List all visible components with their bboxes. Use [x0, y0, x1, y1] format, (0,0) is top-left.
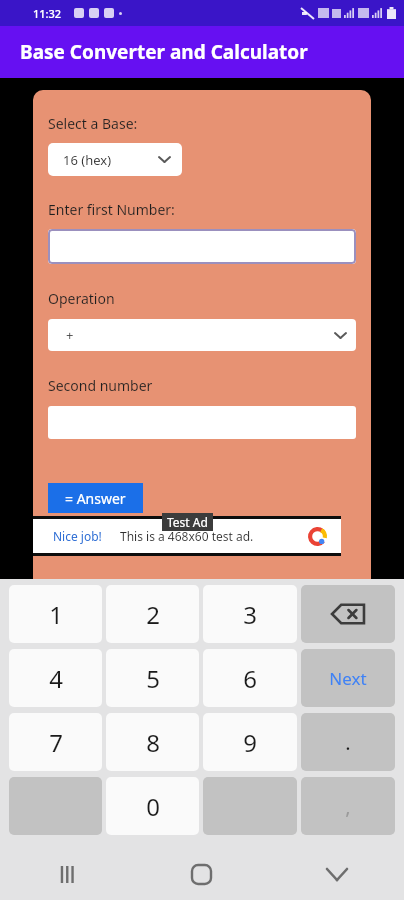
button[interactable]: 0	[106, 777, 199, 835]
staticText: 4	[49, 662, 63, 695]
staticText: 1	[49, 598, 63, 631]
staticText: 0	[146, 790, 160, 823]
staticText: 6	[243, 662, 257, 695]
button[interactable]: Home	[134, 849, 269, 900]
button[interactable]: = Answer	[48, 483, 143, 513]
staticText: Test Ad	[167, 514, 208, 530]
button[interactable]: 8	[106, 713, 199, 771]
button[interactable]: Recents	[0, 849, 134, 900]
staticText: Second number	[48, 376, 153, 395]
button[interactable]: +	[48, 319, 356, 351]
staticText: Base Converter and Calculator	[20, 39, 308, 65]
button[interactable]: Hide keyboard	[269, 849, 404, 900]
button[interactable]: 6	[203, 649, 297, 707]
staticText: = Answer	[65, 489, 126, 508]
staticText: ,	[345, 793, 351, 820]
button[interactable]: Next	[301, 649, 395, 707]
staticText: 5	[146, 662, 160, 695]
staticText: Select a Base:	[48, 114, 138, 133]
button[interactable]: 9	[203, 713, 297, 771]
staticText: +	[66, 326, 74, 344]
staticText: 16 (hex)	[63, 151, 112, 169]
staticText: Operation	[48, 289, 115, 308]
staticText: Nice job!	[53, 528, 102, 544]
button[interactable]: 3	[203, 585, 297, 643]
button[interactable]: Backspace	[301, 585, 395, 643]
staticText: This is a 468x60 test ad.	[120, 528, 254, 544]
button[interactable]: 1	[9, 585, 102, 643]
staticText: .	[345, 729, 351, 756]
staticText: 8	[146, 726, 160, 759]
button[interactable]	[48, 229, 356, 264]
button[interactable]: .	[301, 713, 395, 771]
button[interactable]: 2	[106, 585, 199, 643]
staticText: Enter first Number:	[48, 200, 175, 219]
staticText: 7	[49, 726, 63, 759]
button[interactable]: 16 (hex)	[48, 143, 182, 176]
staticText: Next	[329, 667, 367, 690]
staticText: 3	[243, 598, 257, 631]
staticText: 2	[146, 598, 160, 631]
button[interactable]: 7	[9, 713, 102, 771]
button[interactable]: 5	[106, 649, 199, 707]
staticText: 11:32	[33, 6, 62, 21]
button[interactable]: 4	[9, 649, 102, 707]
staticText: 9	[243, 726, 257, 759]
